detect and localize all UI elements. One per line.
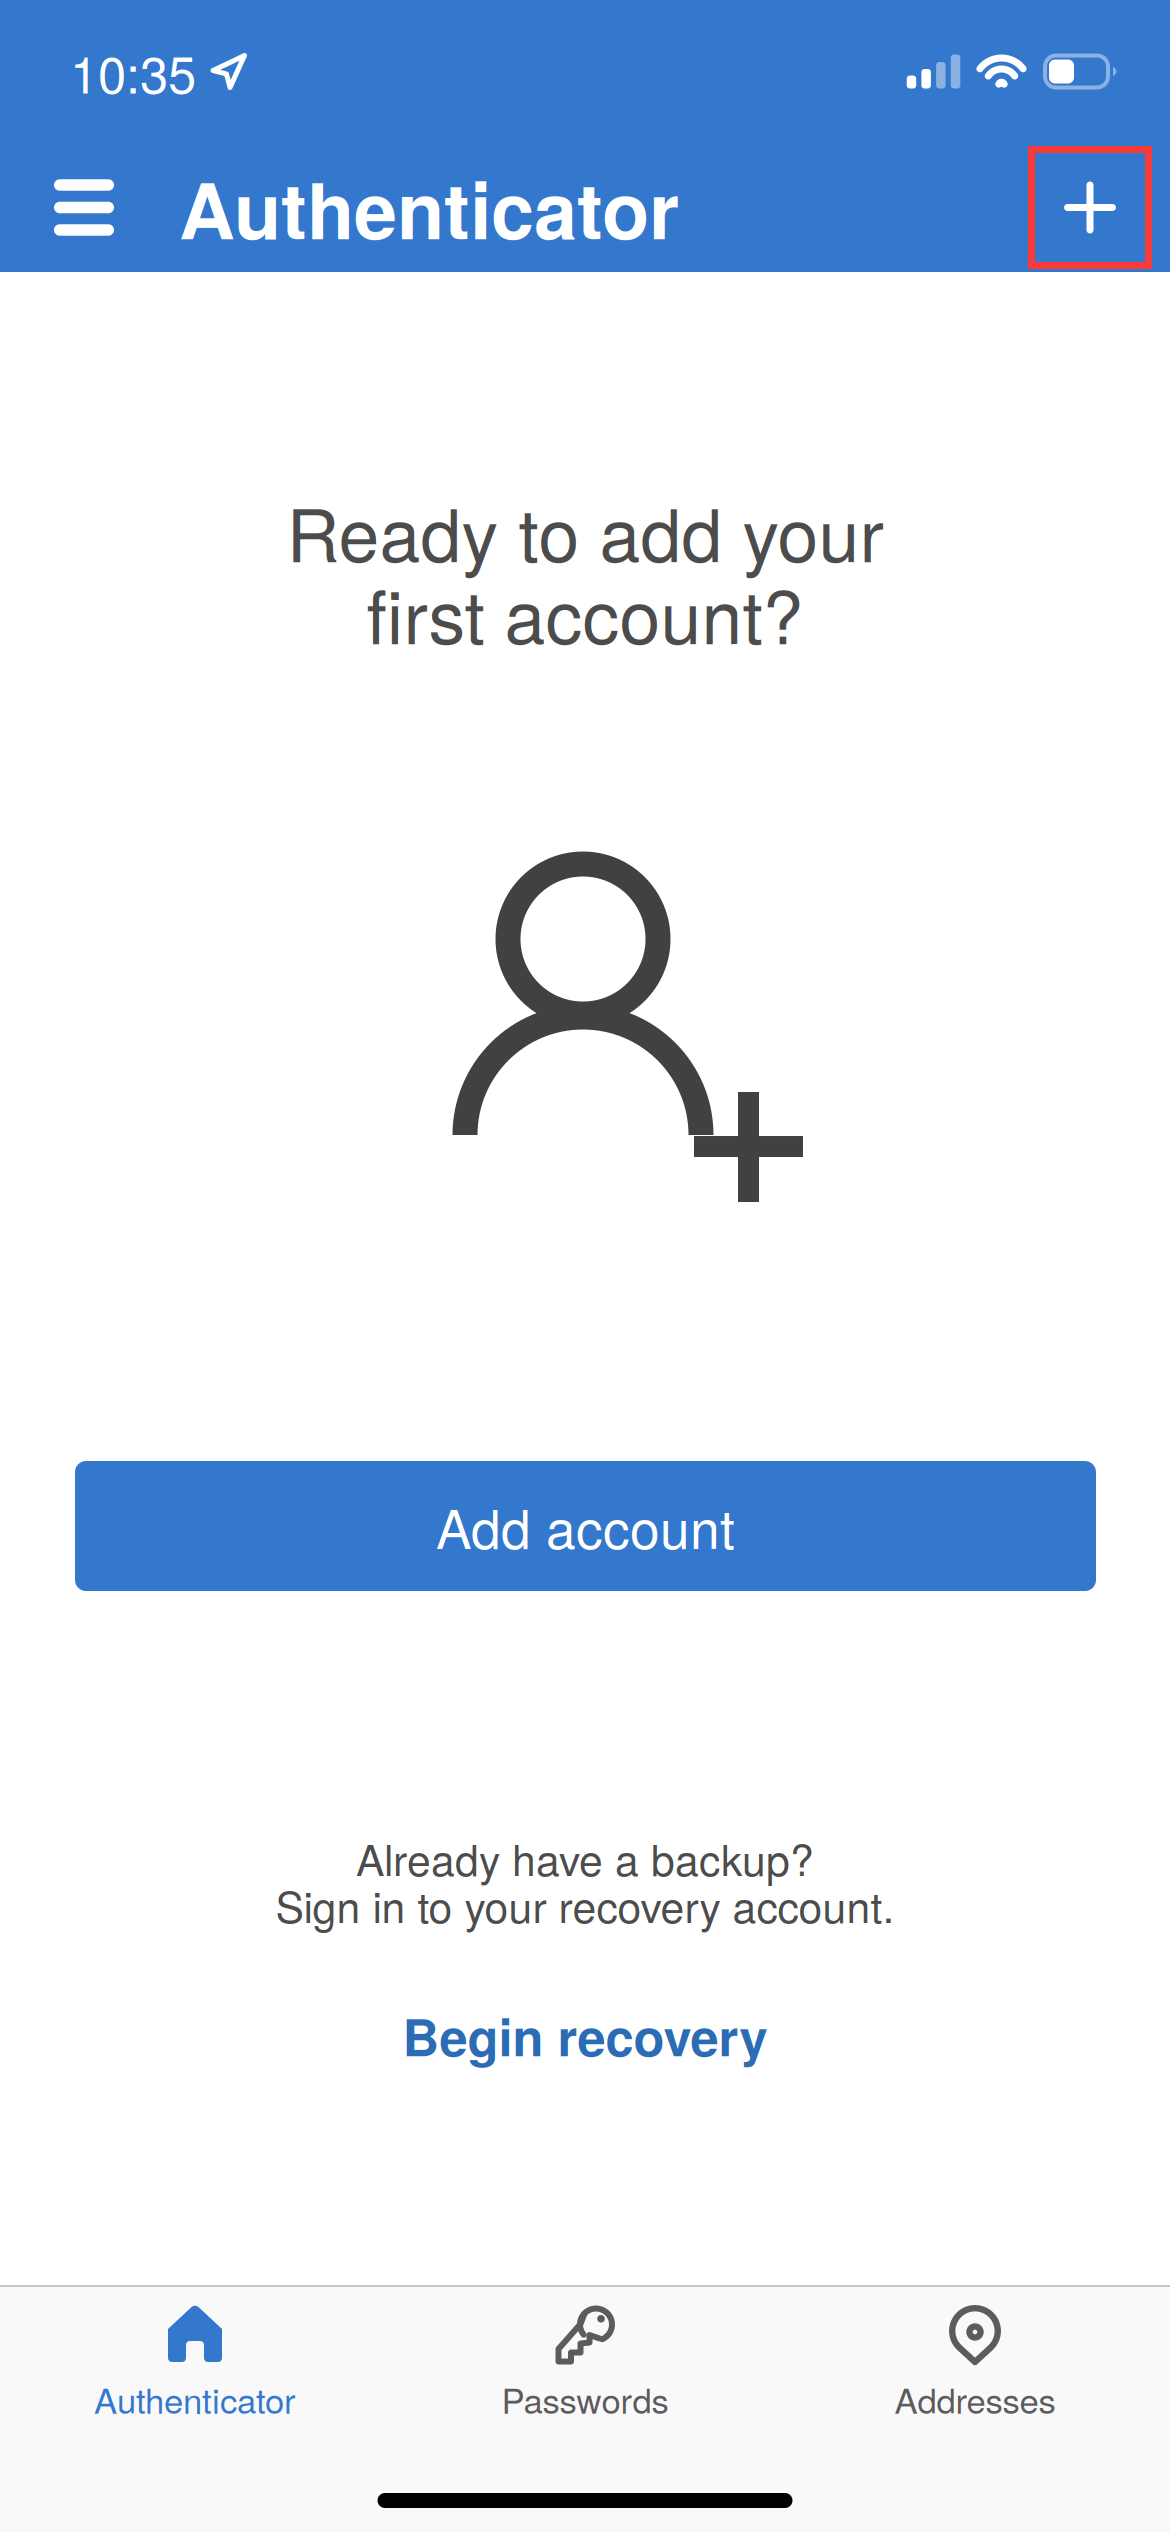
staticText: Sign in to your recovery account. (275, 1874, 894, 1935)
staticText: first account? (366, 560, 803, 665)
staticText: Passwords (501, 2374, 668, 2424)
button[interactable]: Authenticator (0, 2287, 390, 2438)
button[interactable]: Passwords (390, 2287, 780, 2438)
button[interactable]: Addresses (780, 2287, 1170, 2438)
staticText: Already have a backup? (356, 1827, 814, 1888)
staticText: Ready to add your (286, 478, 883, 583)
staticText: 10:35 (70, 35, 196, 108)
button[interactable]: Add account (1028, 146, 1152, 269)
staticText: Authenticator (179, 152, 679, 263)
button[interactable]: Menu (0, 143, 179, 272)
staticText: Add account (436, 1488, 735, 1564)
button[interactable]: Begin recovery (402, 1999, 767, 2072)
staticText: Addresses (894, 2374, 1055, 2424)
staticText: Authenticator (94, 2374, 296, 2424)
button[interactable]: Add account (75, 1461, 1096, 1591)
staticText: Begin recovery (402, 1999, 767, 2072)
